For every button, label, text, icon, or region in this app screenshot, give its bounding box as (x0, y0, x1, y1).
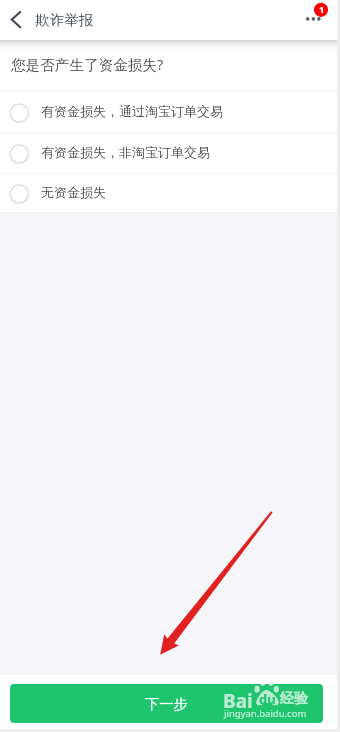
staticText: du (259, 690, 276, 708)
staticText: 有资金损失，非淘宝订单交易 (41, 144, 210, 160)
staticText: Bai (223, 688, 253, 714)
button[interactable]: 无资金损失 (0, 174, 340, 212)
button[interactable]: More options (300, 0, 340, 40)
staticText: 欺诈举报 (35, 11, 93, 29)
button[interactable]: Back (0, 0, 32, 40)
staticText: 1 (319, 3, 324, 16)
button[interactable]: 有资金损失，非淘宝订单交易 (0, 133, 340, 173)
button[interactable]: 有资金损失，通过淘宝订单交易 (0, 92, 340, 132)
staticText: 您是否产生了资金损失? (11, 54, 164, 74)
button[interactable]: 下一步 (10, 684, 323, 723)
staticText: 有资金损失，通过淘宝订单交易 (41, 103, 223, 119)
staticText: 无资金损失 (41, 184, 106, 200)
staticText: 经验 (280, 690, 308, 708)
staticText: jingyan.baidu.com (224, 707, 307, 720)
staticText: 下一步 (145, 695, 188, 713)
